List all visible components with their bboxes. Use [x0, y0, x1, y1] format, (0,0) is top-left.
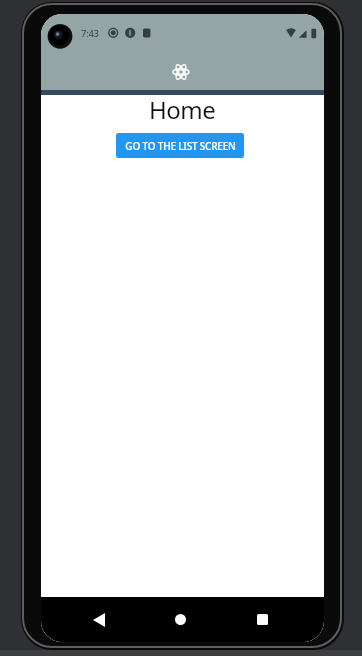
button[interactable]	[81, 597, 117, 642]
button[interactable]	[162, 597, 198, 642]
staticText: 7:43	[81, 27, 99, 40]
staticText: Home	[149, 93, 216, 126]
staticText: GO TO THE LIST SCREEN	[125, 139, 236, 153]
button[interactable]: GO TO THE LIST SCREEN	[116, 133, 244, 158]
button[interactable]	[244, 597, 280, 642]
